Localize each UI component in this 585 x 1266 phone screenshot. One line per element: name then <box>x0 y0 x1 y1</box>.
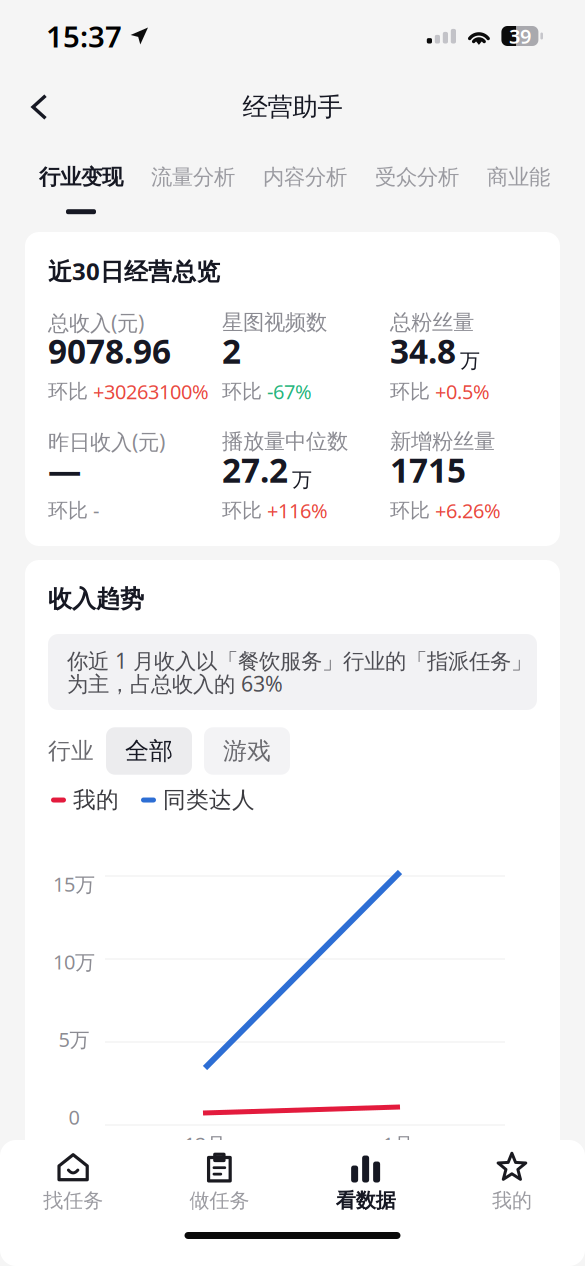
staticText: 行业 <box>48 737 94 765</box>
staticText: 全部 <box>125 736 173 766</box>
button[interactable]: 商业能 <box>473 142 564 214</box>
staticText: 播放量中位数 <box>222 428 348 455</box>
staticText: 总粉丝量 <box>390 309 474 336</box>
staticText: 为主，占总收入的 63% <box>67 669 283 698</box>
staticText: +6.26% <box>435 497 501 524</box>
staticText: +0.5% <box>435 378 490 405</box>
staticText: 万 <box>460 348 480 373</box>
staticText: 昨日收入(元) <box>48 427 165 456</box>
staticText: 0 <box>68 1104 79 1130</box>
staticText: 环比 <box>222 379 262 404</box>
staticText: 15万 <box>53 871 95 897</box>
staticText: 近30日经营总览 <box>48 255 220 287</box>
staticText: 游戏 <box>223 736 271 766</box>
staticText: 总收入(元) <box>48 308 144 337</box>
staticText: +116% <box>267 497 328 524</box>
staticText: 环比 <box>390 498 430 523</box>
staticText: 受众分析 <box>375 164 459 190</box>
button[interactable]: 全部 <box>106 727 192 775</box>
staticText: 流量分析 <box>151 164 235 190</box>
button[interactable]: 受众分析 <box>361 142 473 214</box>
staticText: 做任务 <box>189 1188 249 1213</box>
staticText: 27.2 <box>222 448 288 492</box>
staticText: 39 <box>509 23 531 49</box>
staticText: 1715 <box>390 448 466 492</box>
button[interactable]: 找任务 <box>0 1152 146 1210</box>
staticText: 15:37 <box>46 16 122 55</box>
button[interactable]: 流量分析 <box>137 142 249 214</box>
staticText: 行业变现 <box>39 164 123 190</box>
staticText: +30263100% <box>93 378 209 405</box>
staticText: 你近 1 月收入以「餐饮服务」行业的「指派任务」 <box>67 646 532 675</box>
button[interactable]: 内容分析 <box>249 142 361 214</box>
staticText: 环比 <box>48 379 88 404</box>
staticText: 12月 <box>184 1131 226 1157</box>
staticText: 同类达人 <box>163 786 255 814</box>
staticText: 万 <box>292 467 312 492</box>
staticText: 环比 <box>390 379 430 404</box>
button[interactable]: 看数据 <box>292 1152 439 1210</box>
staticText: 环比 <box>222 498 262 523</box>
staticText: - <box>93 497 99 524</box>
button[interactable]: 做任务 <box>146 1152 292 1210</box>
staticText: 9078.96 <box>48 329 171 373</box>
staticText: 经营助手 <box>242 91 342 122</box>
staticText: — <box>48 448 81 492</box>
staticText: 新增粉丝量 <box>390 428 495 455</box>
staticText: 我的 <box>73 786 119 814</box>
staticText: 2 <box>222 329 241 373</box>
staticText: 环比 <box>48 498 88 523</box>
staticText: 1月 <box>382 1131 413 1157</box>
staticText: 10万 <box>53 948 95 975</box>
staticText: 看数据 <box>336 1188 396 1213</box>
staticText: 内容分析 <box>263 164 347 190</box>
staticText: 商业能 <box>487 164 550 190</box>
staticText: 34.8 <box>390 329 456 373</box>
staticText: 星图视频数 <box>222 309 327 336</box>
button[interactable]: Back <box>17 82 62 132</box>
button[interactable]: 我的 <box>439 1152 585 1210</box>
staticText: 收入趋势 <box>48 584 144 614</box>
staticText: 5万 <box>58 1026 89 1053</box>
staticText: 我的 <box>492 1188 532 1213</box>
staticText: 找任务 <box>43 1188 103 1213</box>
button[interactable]: 行业变现 <box>25 142 137 214</box>
button[interactable]: 游戏 <box>204 727 290 775</box>
staticText: -67% <box>267 378 312 405</box>
